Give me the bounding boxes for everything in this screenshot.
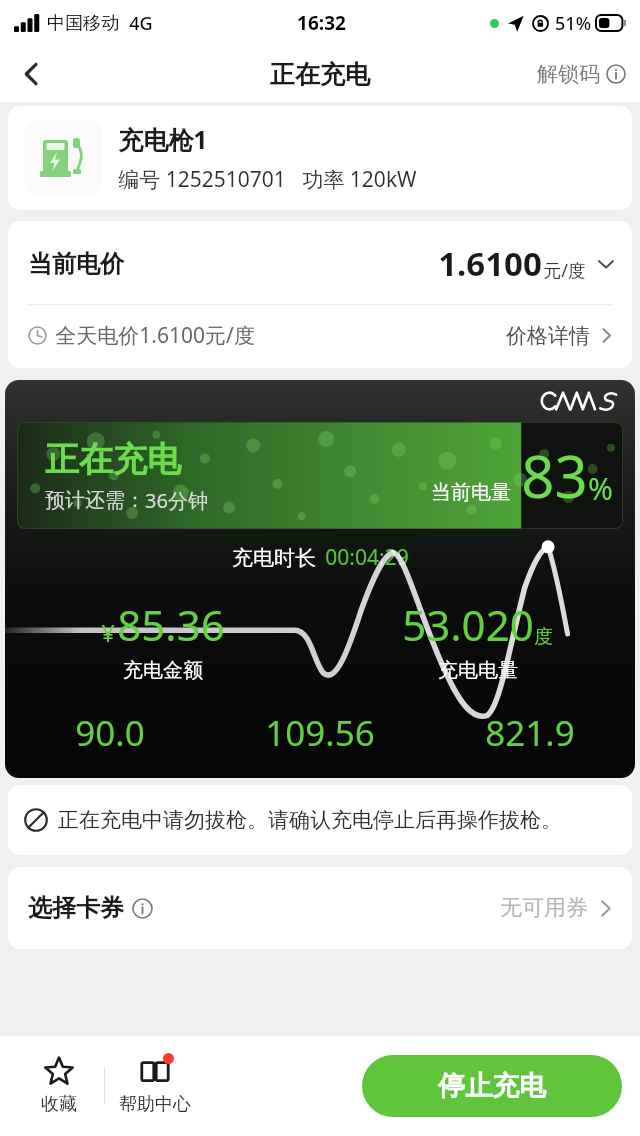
staticText: 无可用券 <box>500 894 588 922</box>
staticText: 53.020 <box>402 596 534 653</box>
staticText: 停止充电 <box>438 1069 546 1103</box>
staticText: 充电枪1 <box>118 122 208 156</box>
staticText: 90.0 <box>75 709 145 757</box>
button[interactable]: 当前电价 <box>8 221 632 304</box>
staticText: 1.6100 <box>438 241 542 286</box>
button[interactable]: 全天电价1.6100元/度 <box>8 305 632 368</box>
staticText: 正在充电中请勿拔枪。请确认充电停止后再操作拔枪。 <box>58 807 562 833</box>
staticText: 充电电量 <box>438 658 518 683</box>
staticText: 83 <box>521 436 588 515</box>
staticText: 85.36 <box>117 596 225 653</box>
staticText: 16:32 <box>297 10 346 36</box>
staticText: 元/度 <box>543 258 586 283</box>
button[interactable]: 选择卡券 <box>8 867 632 949</box>
staticText: 编号 1252510701 <box>118 165 286 194</box>
staticText: 109.56 <box>265 709 375 757</box>
staticText: 当前电量 <box>431 480 511 505</box>
staticText: 中国移动 <box>47 12 119 35</box>
staticText: 36分钟 <box>145 487 208 514</box>
button[interactable]: 解锁码 <box>537 61 626 87</box>
staticText: 预计还需： <box>45 488 145 513</box>
staticText: 当前电价 <box>28 249 124 279</box>
staticText: 正在充电 <box>270 59 370 90</box>
staticText: 价格详情 <box>506 323 590 349</box>
button[interactable]: 停止充电 <box>362 1055 622 1117</box>
button[interactable]: 收藏 <box>14 1036 104 1136</box>
button[interactable]: 充电枪1 <box>8 106 632 210</box>
staticText: 收藏 <box>41 1093 77 1116</box>
staticText: 全天电价1.6100元/度 <box>55 321 255 350</box>
staticText: 功率 120kW <box>302 165 417 194</box>
staticText: 充电金额 <box>123 658 203 683</box>
staticText: 帮助中心 <box>119 1093 191 1116</box>
staticText: 度 <box>534 625 553 649</box>
staticText: 选择卡券 <box>28 893 124 923</box>
staticText: % <box>588 468 613 509</box>
staticText: 00:04:29 <box>325 543 409 572</box>
staticText: 4G <box>129 11 153 36</box>
staticText: 51% <box>555 11 591 36</box>
button[interactable]: 帮助中心 <box>105 1036 205 1136</box>
staticText: 解锁码 <box>537 61 600 87</box>
staticText: ¥ <box>101 617 115 648</box>
staticText: 正在充电 <box>45 438 181 481</box>
staticText: 821.9 <box>485 709 575 757</box>
button[interactable]: Back <box>8 50 56 98</box>
staticText: 充电时长 <box>232 545 316 571</box>
button[interactable]: 正在充电 <box>17 422 623 529</box>
